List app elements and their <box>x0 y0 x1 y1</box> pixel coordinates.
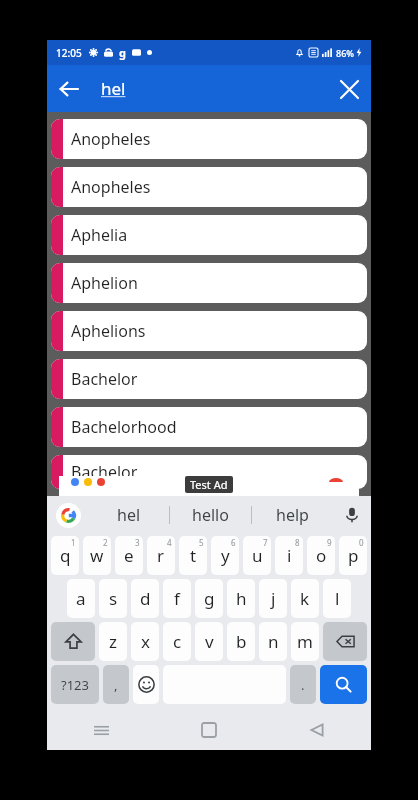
button[interactable]: f <box>163 579 191 618</box>
staticText: h <box>236 587 247 610</box>
staticText: z <box>109 630 117 653</box>
button[interactable]: Search <box>320 665 367 704</box>
staticText: 12:05 <box>56 46 82 60</box>
staticText: d <box>140 587 151 610</box>
staticText: 2 <box>103 537 108 548</box>
button[interactable]: Bachelor <box>51 455 367 489</box>
button[interactable]: v <box>195 622 223 661</box>
button[interactable]: h <box>227 579 255 618</box>
button[interactable]: Anopheles <box>51 119 367 159</box>
button[interactable]: Home <box>155 710 263 750</box>
button[interactable]: hello <box>170 496 251 534</box>
button[interactable]: d <box>131 579 159 618</box>
staticText: Anopheles <box>71 128 151 150</box>
staticText: , <box>114 676 118 694</box>
button[interactable]: Bachelor <box>51 359 367 399</box>
staticText: 4 <box>167 537 172 548</box>
staticText: ?123 <box>61 676 89 694</box>
staticText: 0 <box>359 537 364 548</box>
button[interactable]: i <box>275 536 303 575</box>
button[interactable]: ?123 <box>51 665 99 704</box>
button[interactable]: hel <box>89 496 169 534</box>
button[interactable]: z <box>99 622 127 661</box>
button[interactable]: Google <box>47 496 89 534</box>
staticText: 3 <box>135 537 140 548</box>
button[interactable]: , <box>103 665 129 704</box>
staticText: b <box>236 630 247 653</box>
button[interactable]: Bachelorhood <box>51 407 367 447</box>
button[interactable]: e <box>115 536 143 575</box>
staticText: Aphelions <box>71 320 146 342</box>
button[interactable]: Anopheles <box>51 167 367 207</box>
staticText: r <box>157 544 165 567</box>
button[interactable]: Voice input <box>333 496 371 534</box>
staticText: y <box>221 544 230 567</box>
staticText: i <box>287 544 292 567</box>
button[interactable]: o <box>307 536 335 575</box>
button[interactable]: p <box>339 536 367 575</box>
button[interactable]: u <box>243 536 271 575</box>
staticText: hello <box>192 504 229 526</box>
staticText: g <box>204 587 215 610</box>
button[interactable]: l <box>323 579 351 618</box>
staticText: e <box>124 544 134 567</box>
button[interactable]: k <box>291 579 319 618</box>
button[interactable]: y <box>211 536 239 575</box>
staticText: t <box>190 544 197 567</box>
staticText: f <box>174 587 180 610</box>
staticText: Test Ad <box>190 477 228 492</box>
button[interactable]: help <box>252 496 333 534</box>
staticText: s <box>109 587 118 610</box>
button[interactable]: t <box>179 536 207 575</box>
staticText: Bachelorhood <box>71 416 177 438</box>
staticText: 6 <box>231 537 236 548</box>
staticText: v <box>205 630 214 653</box>
button[interactable]: j <box>259 579 287 618</box>
button[interactable]: w <box>83 536 111 575</box>
button[interactable]: Clear <box>327 67 371 111</box>
button[interactable]: a <box>67 579 95 618</box>
staticText: l <box>335 587 340 610</box>
button[interactable]: Aphelia <box>51 215 367 255</box>
staticText: q <box>60 544 71 567</box>
staticText: o <box>316 544 327 567</box>
staticText: Aphelia <box>71 224 128 246</box>
staticText: Bachelor <box>71 461 138 483</box>
button[interactable]: Back <box>47 67 91 111</box>
button[interactable]: Emoji <box>133 665 159 704</box>
button[interactable]: b <box>227 622 255 661</box>
staticText: Aphelion <box>71 272 138 294</box>
button[interactable]: hel <box>101 77 126 100</box>
staticText: 1 <box>71 537 76 548</box>
button[interactable]: c <box>163 622 191 661</box>
staticText: 7 <box>263 537 268 548</box>
button[interactable]: s <box>99 579 127 618</box>
button[interactable]: r <box>147 536 175 575</box>
button[interactable]: Back <box>263 710 371 750</box>
staticText: x <box>141 630 150 653</box>
button[interactable]: q <box>51 536 79 575</box>
staticText: help <box>276 504 309 526</box>
button[interactable]: Backspace <box>323 622 367 661</box>
button[interactable]: g <box>195 579 223 618</box>
staticText: 8 <box>295 537 300 548</box>
staticText: 5 <box>199 537 204 548</box>
staticText: a <box>76 587 86 610</box>
button[interactable]: Shift <box>51 622 95 661</box>
staticText: w <box>90 544 104 567</box>
staticText: p <box>348 544 359 567</box>
staticText: n <box>268 630 279 653</box>
button[interactable]: Aphelions <box>51 311 367 351</box>
button[interactable]: n <box>259 622 287 661</box>
staticText: g <box>119 45 126 60</box>
button[interactable]: Test Ad <box>59 476 359 496</box>
button[interactable]: x <box>131 622 159 661</box>
button[interactable]: Aphelion <box>51 263 367 303</box>
staticText: c <box>173 630 182 653</box>
staticText: m <box>297 630 313 653</box>
button[interactable]: Recents <box>47 710 155 750</box>
staticText: Anopheles <box>71 176 151 198</box>
button[interactable]: . <box>290 665 316 704</box>
button[interactable]: m <box>291 622 319 661</box>
